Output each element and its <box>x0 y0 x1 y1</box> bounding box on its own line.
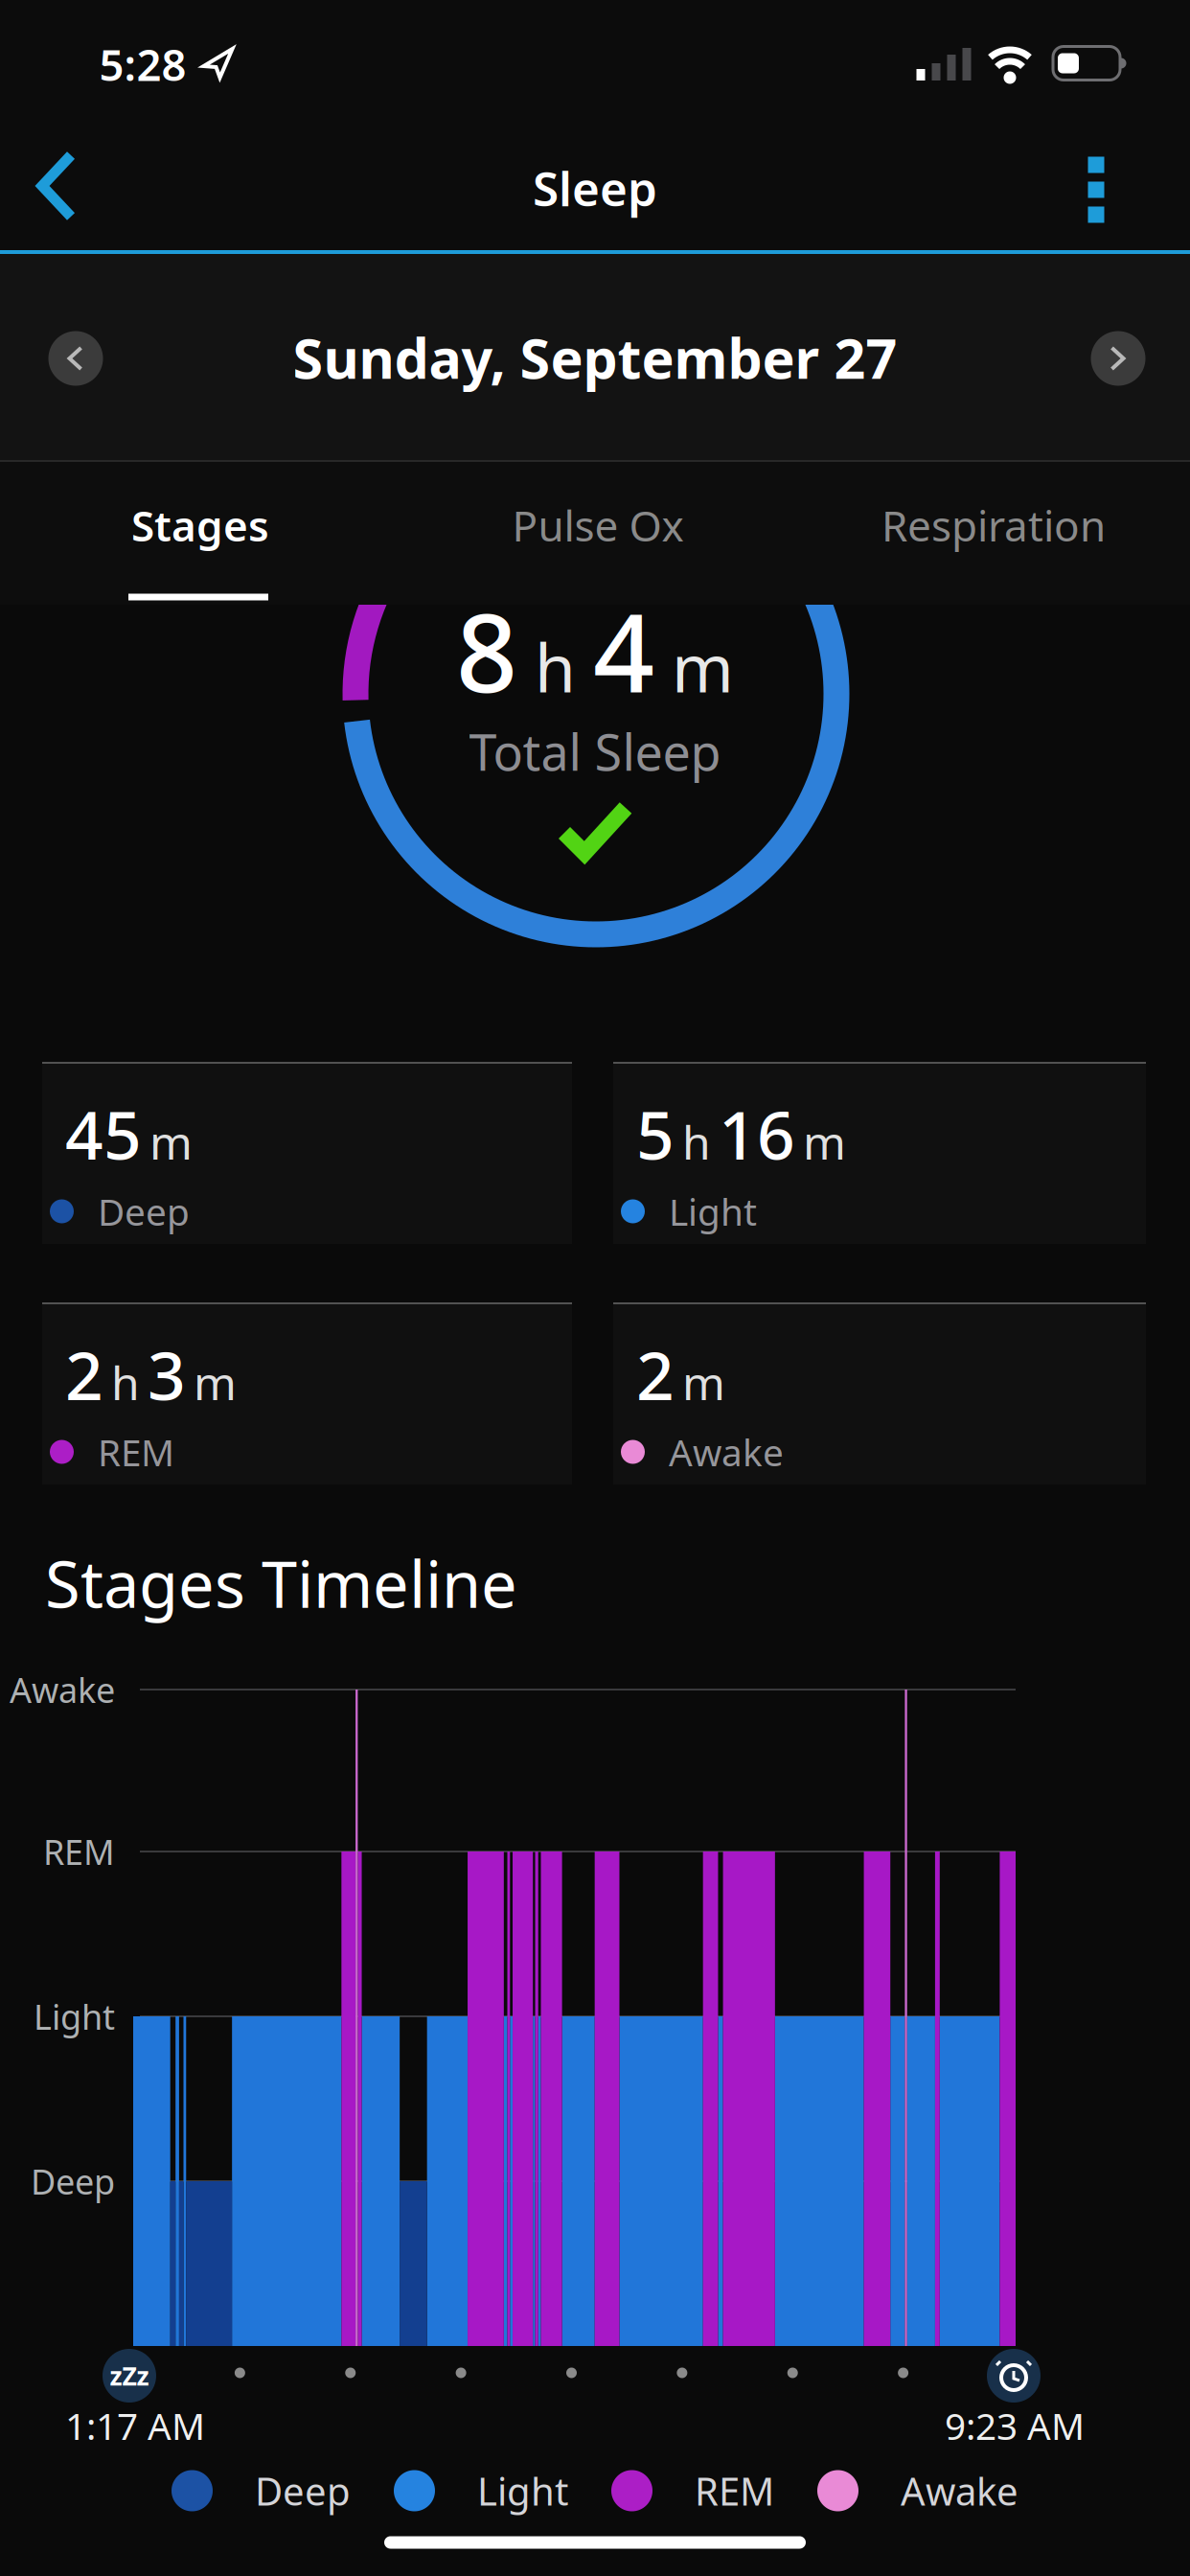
staticText: 3 <box>148 1330 186 1418</box>
staticText: Light <box>669 1187 757 1236</box>
staticText: 5 <box>636 1090 675 1178</box>
staticText: Light <box>477 2465 568 2516</box>
staticText: Deep <box>31 2158 115 2204</box>
staticText: REM <box>695 2465 774 2516</box>
staticText: 9:23 AM <box>945 2401 1085 2450</box>
staticText: 8 <box>456 579 517 722</box>
staticText: 4 <box>593 579 654 722</box>
staticText: Respiration <box>881 497 1106 553</box>
staticText: REM <box>98 1427 174 1476</box>
staticText: zZz <box>110 2359 149 2393</box>
staticText: 5:28 <box>99 35 186 93</box>
staticText: Deep <box>255 2465 351 2516</box>
staticText: Sleep <box>533 156 657 219</box>
staticText: Light <box>34 1993 115 2039</box>
staticText: h <box>111 1352 140 1413</box>
staticText: m <box>682 1352 725 1413</box>
staticText: Pulse Ox <box>512 497 684 553</box>
staticText: 2 <box>636 1330 675 1418</box>
staticText: Total Sleep <box>469 718 721 784</box>
staticText: Stages <box>131 497 269 553</box>
staticText: m <box>149 1111 193 1172</box>
staticText: REM <box>43 1829 115 1874</box>
staticText: 2 <box>65 1330 103 1418</box>
staticText: Deep <box>98 1187 190 1236</box>
staticText: Sunday, September 27 <box>293 321 897 394</box>
staticText: 1:17 AM <box>65 2401 205 2450</box>
staticText: Awake <box>901 2465 1018 2516</box>
staticText: h <box>535 622 576 711</box>
staticText: Awake <box>10 1667 115 1712</box>
staticText: Stages Timeline <box>45 1541 517 1626</box>
staticText: 16 <box>719 1090 795 1178</box>
staticText: m <box>194 1352 237 1413</box>
staticText: 45 <box>65 1090 142 1178</box>
staticText: h <box>682 1111 711 1172</box>
staticText: m <box>803 1111 846 1172</box>
staticText: Awake <box>669 1427 784 1476</box>
staticText: m <box>672 622 734 711</box>
